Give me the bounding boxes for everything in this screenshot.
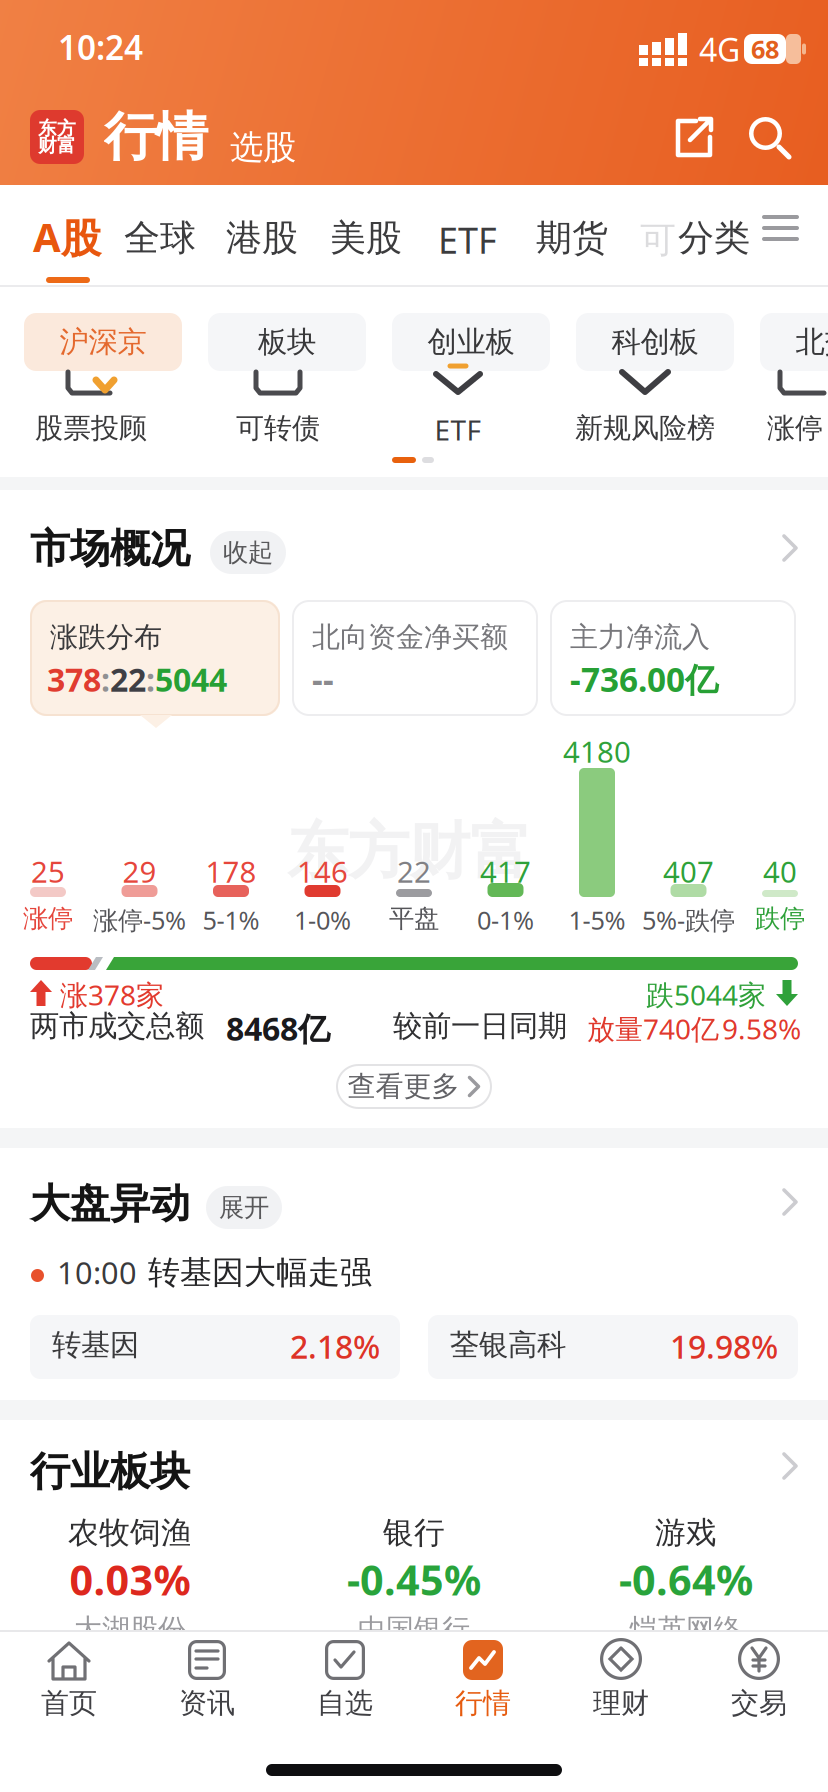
- button[interactable]: ETF: [438, 216, 497, 264]
- button[interactable]: 创业板: [392, 313, 550, 371]
- staticText: 0.03%: [69, 1552, 190, 1607]
- button[interactable]: 查看更多: [336, 1064, 492, 1109]
- button[interactable]: 展开: [206, 1186, 282, 1229]
- staticText: 行情: [104, 105, 208, 169]
- staticText: 2.18%: [290, 1325, 380, 1367]
- button[interactable]: 分享: [670, 114, 716, 160]
- staticText: 北交所: [795, 324, 828, 360]
- staticText: 跌5044家: [646, 976, 766, 1013]
- button[interactable]: 新规风险榜: [560, 360, 730, 448]
- staticText: 游戏: [655, 1514, 717, 1552]
- staticText: 10:00: [57, 1252, 137, 1293]
- staticText: 东方财富: [287, 814, 531, 889]
- button[interactable]: 荃银高科: [428, 1315, 798, 1379]
- staticText: 创业板: [427, 324, 514, 360]
- button[interactable]: 行情: [418, 1640, 548, 1720]
- button[interactable]: 银行: [0, 0, 240, 55]
- staticText: 市场概况: [30, 524, 190, 573]
- staticText: :: [146, 658, 155, 700]
- staticText: 29: [122, 852, 156, 891]
- button[interactable]: 农牧饲渔: [0, 0, 240, 55]
- staticText: 68: [751, 32, 779, 66]
- staticText: 40: [763, 852, 797, 891]
- button[interactable]: 期货: [536, 216, 608, 260]
- staticText: 22: [397, 852, 431, 891]
- staticText: 首页: [41, 1686, 97, 1720]
- staticText: 资讯: [179, 1686, 235, 1720]
- button[interactable]: 北交所: [760, 313, 828, 371]
- button[interactable]: 美股: [330, 216, 402, 260]
- button[interactable]: 理财: [556, 1640, 686, 1720]
- staticText: A股: [33, 210, 101, 263]
- staticText: ETF: [434, 411, 481, 448]
- button[interactable]: 搜索: [748, 116, 794, 162]
- button[interactable]: 北向资金净买额: [292, 600, 538, 716]
- staticText: 两市成交总额: [30, 1008, 204, 1044]
- staticText: 主力净流入: [570, 620, 710, 654]
- staticText: 美股: [330, 216, 402, 260]
- button[interactable]: 更多分类: [762, 215, 799, 241]
- staticText: 行业板块: [30, 1447, 190, 1496]
- staticText: --: [312, 657, 334, 701]
- staticText: 自选: [317, 1686, 373, 1720]
- staticText: 交易: [731, 1686, 787, 1720]
- button[interactable]: 自选: [280, 1640, 410, 1720]
- button[interactable]: 游戏: [0, 0, 240, 55]
- staticText: 选股: [230, 127, 296, 168]
- button[interactable]: 查看市场概况: [782, 534, 798, 562]
- staticText: 北向资金净买额: [312, 620, 508, 654]
- staticText: 荃银高科: [450, 1327, 566, 1363]
- button[interactable]: 查看行业板块: [782, 1452, 798, 1480]
- staticText: 分类: [678, 216, 750, 260]
- staticText: 新规风险榜: [575, 411, 715, 445]
- staticText: 港股: [226, 216, 298, 260]
- staticText: 平盘: [389, 903, 439, 934]
- button[interactable]: 涨停: [710, 360, 828, 448]
- staticText: 可: [640, 218, 676, 262]
- staticText: 股票投顾: [35, 411, 147, 445]
- button[interactable]: 转基因: [30, 1315, 400, 1379]
- button[interactable]: A股: [33, 185, 109, 285]
- staticText: 378: [47, 658, 101, 700]
- staticText: 农牧饲渔: [68, 1514, 192, 1552]
- staticText: 大盘异动: [30, 1179, 190, 1228]
- staticText: 科创板: [611, 324, 698, 360]
- button[interactable]: 首页: [4, 1640, 134, 1720]
- staticText: 期货: [536, 216, 608, 260]
- staticText: 涨停: [23, 903, 73, 934]
- staticText: ETF: [438, 216, 497, 264]
- staticText: 1-5%: [568, 903, 625, 937]
- button[interactable]: 港股: [226, 216, 298, 260]
- staticText: 沪深京: [59, 324, 146, 360]
- button[interactable]: 主力净流入: [550, 600, 796, 716]
- staticText: 全球: [124, 216, 196, 260]
- staticText: 1-0%: [294, 903, 351, 937]
- button[interactable]: 股票投顾: [6, 360, 176, 448]
- staticText: 收起: [223, 537, 273, 568]
- button[interactable]: 科创板: [576, 313, 734, 371]
- staticText: 407: [663, 852, 714, 891]
- button[interactable]: 交易: [694, 1640, 824, 1720]
- button[interactable]: 板块: [208, 313, 366, 371]
- button[interactable]: 查看大盘异动: [782, 1188, 798, 1216]
- button[interactable]: 全球: [124, 216, 196, 260]
- button[interactable]: 资讯: [142, 1640, 272, 1720]
- staticText: :: [101, 658, 110, 700]
- staticText: 理财: [593, 1686, 649, 1720]
- button[interactable]: 收起: [210, 531, 286, 574]
- staticText: 展开: [219, 1192, 269, 1223]
- staticText: 9.58%: [722, 1010, 801, 1047]
- staticText: 19.98%: [670, 1325, 778, 1367]
- button[interactable]: ETF: [373, 360, 543, 448]
- staticText: 转基因: [52, 1327, 139, 1363]
- button[interactable]: 沪深京: [24, 313, 182, 371]
- staticText: 大湖股份: [74, 1612, 186, 1646]
- staticText: 板块: [258, 324, 316, 360]
- staticText: 10:24: [58, 25, 143, 69]
- button[interactable]: 分类: [678, 216, 750, 260]
- button[interactable]: 涨跌分布: [30, 600, 280, 716]
- staticText: 转基因大幅走强: [148, 1253, 372, 1292]
- button[interactable]: 可转债: [193, 360, 363, 448]
- staticText: 8468亿: [226, 1007, 330, 1049]
- staticText: 178: [205, 852, 256, 891]
